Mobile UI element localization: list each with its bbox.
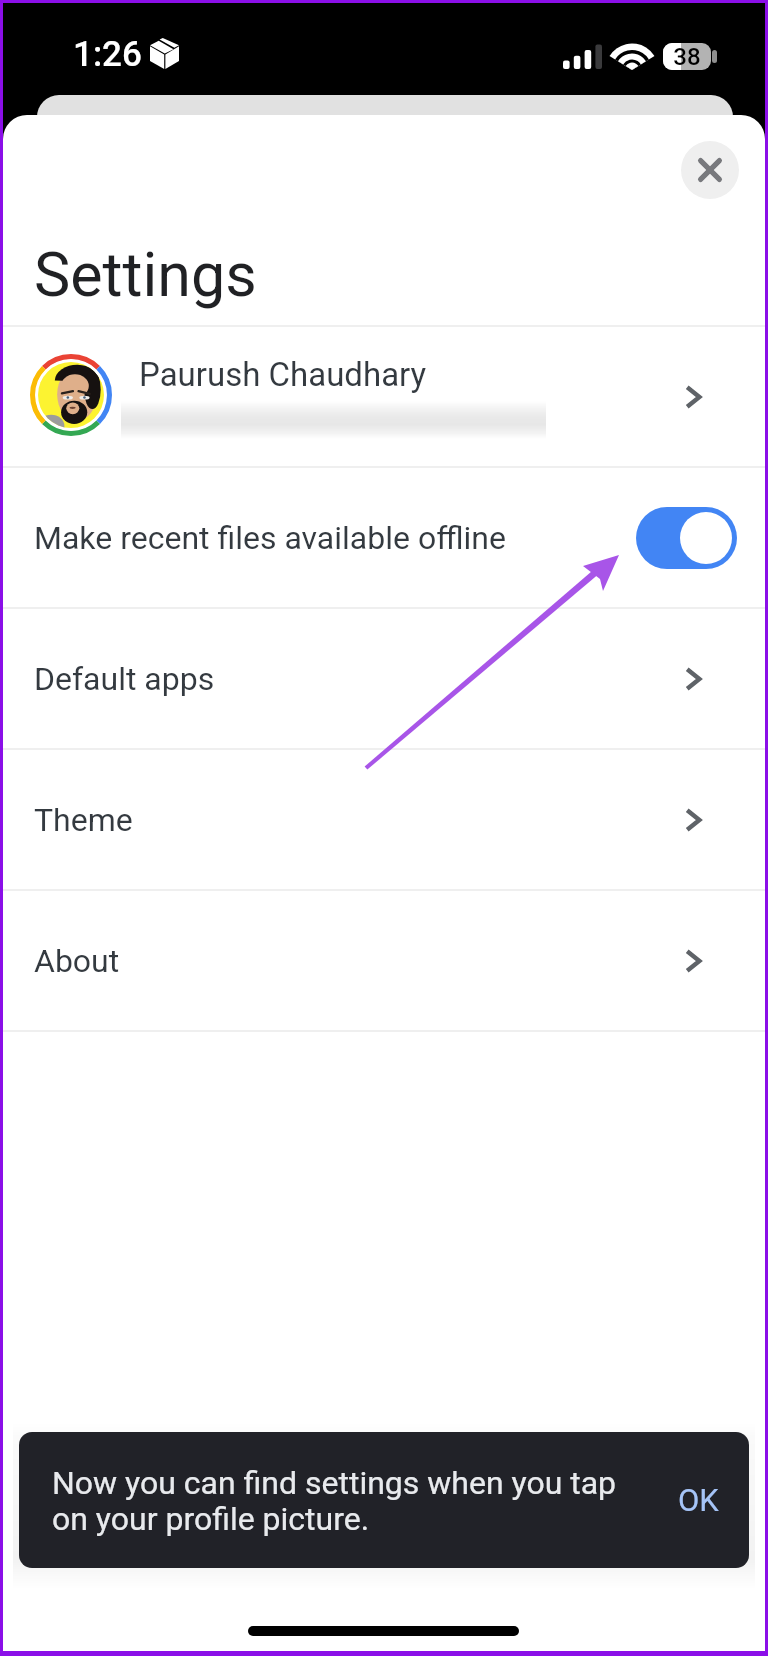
staticText: OK [678, 1482, 719, 1518]
button[interactable]: About [3, 891, 765, 1030]
button[interactable]: Theme [3, 750, 765, 889]
button[interactable]: Close [681, 141, 739, 199]
staticText: 1:26 [73, 34, 142, 75]
staticText: About [34, 942, 120, 980]
staticText: 38 [673, 43, 701, 70]
button[interactable]: Make recent files available offline [636, 507, 737, 569]
staticText: Theme [34, 801, 133, 839]
staticText: Make recent files available offline [34, 519, 506, 557]
staticText: Now you can find settings when you tap o… [52, 1464, 617, 1538]
button[interactable]: OK [662, 1470, 735, 1530]
button[interactable]: Paurush Chaudhary [3, 327, 765, 466]
button[interactable]: Default apps [3, 609, 765, 748]
staticText: Settings [34, 239, 257, 310]
button[interactable]: Make recent files available offline [3, 468, 765, 607]
staticText: Paurush Chaudhary [139, 355, 427, 394]
staticText: Default apps [34, 660, 215, 698]
